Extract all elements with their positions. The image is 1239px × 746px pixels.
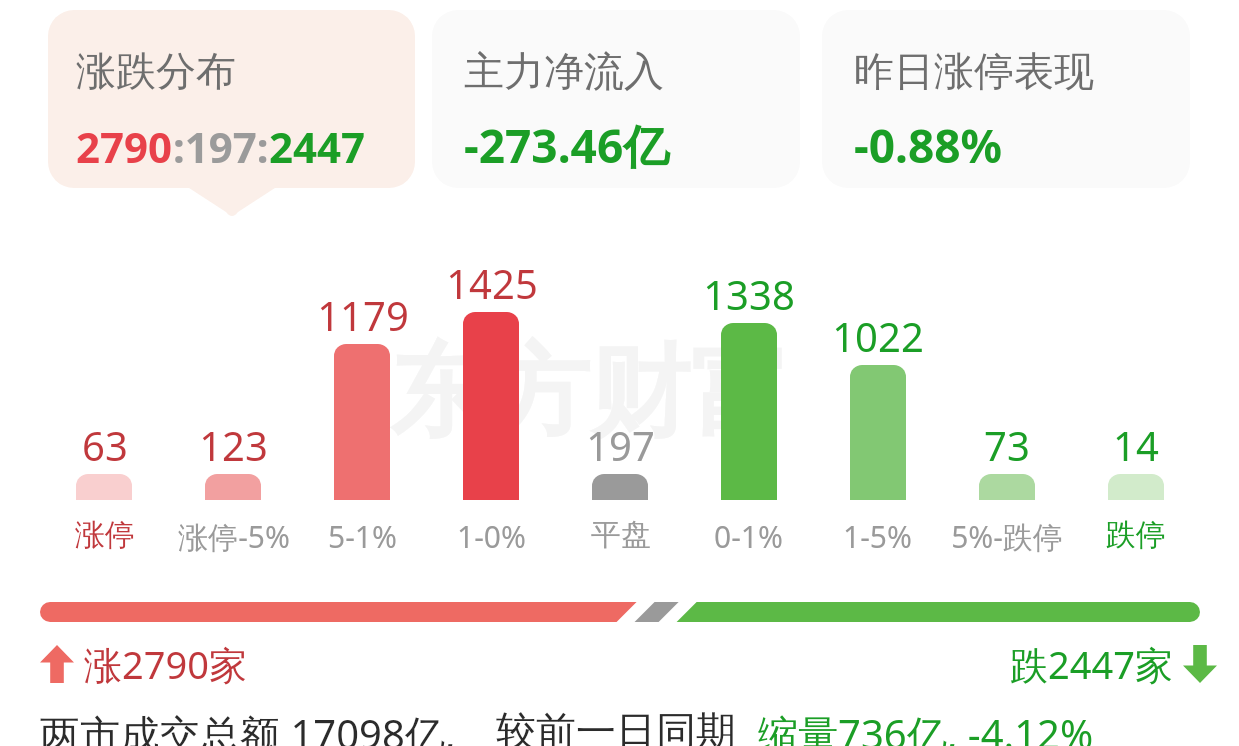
staticText: 1-5% [843, 516, 912, 557]
staticText: 197 [586, 418, 655, 472]
button[interactable] [463, 312, 519, 500]
other: 下跌 [1183, 645, 1217, 683]
button[interactable]: 昨日涨停表现 [822, 10, 1190, 188]
button[interactable] [850, 365, 906, 500]
staticText: 1338 [703, 267, 795, 321]
button[interactable] [1108, 474, 1164, 500]
staticText: 涨停-5% [178, 516, 290, 557]
staticText: 跌停 [1106, 516, 1166, 554]
button[interactable]: 两市成交总额 17098亿, [40, 706, 1239, 746]
staticText: 两市成交总额 17098亿, [40, 706, 456, 746]
button[interactable] [76, 474, 132, 500]
staticText: 昨日涨停表现 [854, 46, 1094, 96]
staticText: 1179 [317, 288, 409, 342]
button[interactable]: 跌2447家 [1010, 638, 1217, 690]
staticText: 平盘 [591, 516, 651, 554]
button[interactable] [592, 474, 648, 500]
other: 上涨 [40, 645, 74, 683]
staticText: -273.46亿 [464, 114, 670, 177]
staticText: 63 [82, 418, 128, 472]
staticText: 跌2447家 [1010, 638, 1173, 690]
button[interactable]: 主力净流入 [432, 10, 800, 188]
staticText: -0.88% [854, 114, 1003, 177]
staticText: 涨跌分布 [76, 46, 236, 96]
staticText: 123 [199, 418, 268, 472]
staticText: 5-1% [328, 516, 397, 557]
staticText: 涨停 [75, 516, 135, 554]
staticText: 缩量736亿, -4.12% [758, 706, 1094, 746]
staticText: 14 [1113, 418, 1159, 472]
staticText: 1022 [832, 309, 924, 363]
staticText: 较前一日同期 [496, 706, 736, 746]
button[interactable] [40, 602, 1200, 622]
staticText: 1425 [446, 256, 538, 310]
button[interactable] [721, 323, 777, 500]
staticText: 2447 [269, 118, 366, 175]
staticText: :197: [173, 118, 269, 175]
button[interactable]: 涨跌分布 [48, 10, 415, 188]
staticText: 2790 [76, 118, 173, 175]
staticText: 5%-跌停 [951, 516, 1063, 557]
button[interactable] [334, 344, 390, 500]
staticText: 73 [984, 418, 1030, 472]
button[interactable] [979, 474, 1035, 500]
staticText: 主力净流入 [464, 46, 664, 96]
staticText: 1-0% [457, 516, 526, 557]
staticText: 东方财富 [390, 330, 790, 456]
button[interactable]: 上涨 [40, 638, 247, 690]
staticText: 0-1% [714, 516, 783, 557]
button[interactable] [205, 474, 261, 500]
staticText: 涨2790家 [84, 638, 247, 690]
